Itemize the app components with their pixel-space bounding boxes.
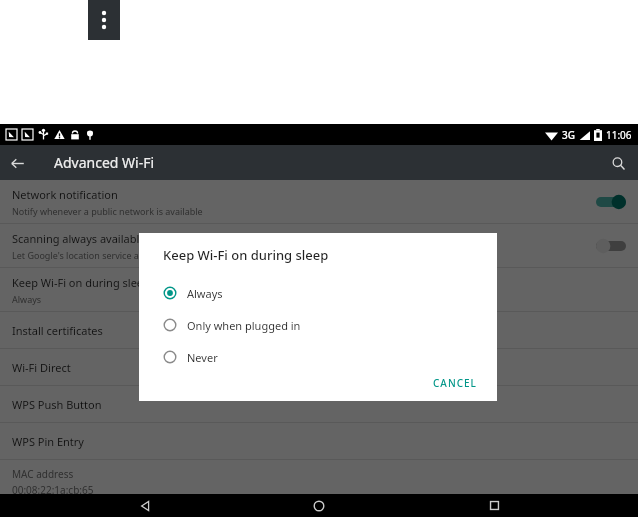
staticText: Always bbox=[187, 286, 223, 301]
staticText: Notify whenever a public network is avai… bbox=[12, 205, 203, 217]
staticText: 3G bbox=[562, 128, 575, 142]
staticText: CANCEL bbox=[433, 376, 477, 387]
staticText: 00:08:22:1a:cb:65 bbox=[12, 483, 94, 494]
button[interactable]: CANCEL bbox=[427, 373, 483, 390]
button[interactable]: Never bbox=[139, 341, 497, 373]
staticText: Always bbox=[12, 293, 42, 305]
staticText: Advanced Wi-Fi bbox=[54, 153, 155, 172]
staticText: Let Google's location service and other … bbox=[12, 249, 276, 261]
button[interactable]: Search bbox=[604, 149, 632, 177]
staticText: Only when plugged in bbox=[187, 318, 301, 333]
staticText: WPS Pin Entry bbox=[12, 434, 84, 449]
staticText: Wi-Fi Direct bbox=[12, 360, 71, 375]
button[interactable]: WPS Push Button bbox=[0, 386, 638, 422]
button[interactable]: Home bbox=[289, 494, 349, 517]
button[interactable]: Always bbox=[139, 277, 497, 309]
button[interactable]: Wi-Fi Direct bbox=[0, 349, 638, 385]
staticText: WPS Push Button bbox=[12, 397, 102, 412]
staticText: 11:06 bbox=[606, 128, 632, 142]
button[interactable]: More options bbox=[88, 0, 120, 40]
button[interactable]: Only when plugged in bbox=[139, 309, 497, 341]
staticText: Never bbox=[187, 350, 218, 365]
staticText: Keep Wi-Fi on during sleep bbox=[163, 246, 329, 264]
staticText: Network notification bbox=[12, 187, 118, 202]
button[interactable]: Recent apps bbox=[464, 494, 524, 517]
button[interactable]: Scanning always available bbox=[0, 224, 638, 267]
button[interactable]: Back bbox=[115, 494, 175, 517]
button[interactable]: Back bbox=[0, 146, 34, 180]
staticText: Scanning always available bbox=[12, 231, 146, 246]
staticText: Keep Wi-Fi on during sleep bbox=[12, 275, 150, 290]
button[interactable]: Network notification bbox=[0, 180, 638, 223]
button[interactable]: Install certificates bbox=[0, 312, 638, 348]
staticText: Install certificates bbox=[12, 323, 103, 338]
staticText: MAC address bbox=[12, 467, 74, 481]
button[interactable]: Keep Wi-Fi on during sleep bbox=[0, 268, 638, 311]
button[interactable]: MAC address bbox=[0, 460, 638, 494]
button[interactable]: WPS Pin Entry bbox=[0, 423, 638, 459]
